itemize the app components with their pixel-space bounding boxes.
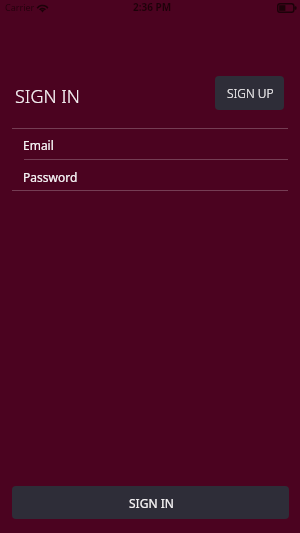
button[interactable]: Password	[0, 161, 300, 191]
staticText: SIGN UP	[227, 85, 274, 101]
button[interactable]: SIGN IN	[12, 486, 289, 519]
other: Wifi signal	[36, 2, 49, 12]
staticText: SIGN IN	[15, 84, 80, 109]
button[interactable]: Email	[0, 129, 300, 159]
staticText: SIGN IN	[129, 495, 174, 511]
button[interactable]: SIGN UP	[215, 76, 284, 110]
other: Battery level	[277, 3, 297, 13]
staticText: Email	[23, 137, 54, 153]
staticText: Carrier	[5, 1, 35, 13]
staticText: 2:36 PM	[133, 0, 172, 14]
staticText: Password	[23, 169, 78, 185]
